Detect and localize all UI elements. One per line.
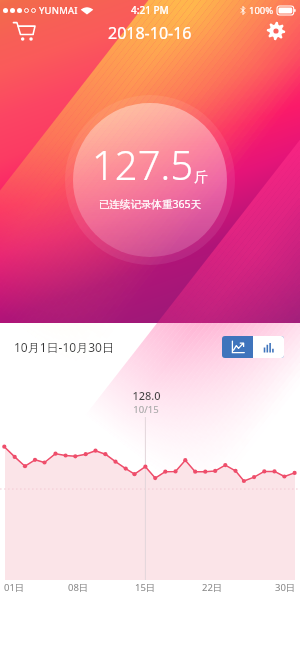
staticText: 10/15: [133, 403, 159, 416]
staticText: 22日: [202, 581, 223, 594]
button[interactable]: Bar chart: [253, 336, 284, 358]
staticText: 4:21 PM: [131, 3, 169, 17]
staticText: 15日: [135, 581, 156, 594]
staticText: 已连续记录体重365天: [99, 197, 202, 211]
staticText: 斤: [194, 169, 208, 187]
staticText: 10月1日-10月30日: [14, 339, 114, 355]
staticText: 08日: [68, 581, 89, 594]
staticText: 01日: [4, 581, 25, 594]
button[interactable]: Shop: [6, 13, 42, 49]
staticText: YUNMAI: [39, 4, 78, 17]
button[interactable]: 127.5: [73, 103, 227, 257]
staticText: 2018-10-16: [108, 22, 192, 44]
staticText: 127.5: [92, 137, 194, 191]
button[interactable]: Settings: [258, 13, 294, 49]
staticText: 30日: [275, 581, 296, 594]
staticText: 100%: [249, 4, 274, 17]
button[interactable]: Line chart: [222, 336, 253, 358]
staticText: 128.0: [132, 388, 161, 403]
